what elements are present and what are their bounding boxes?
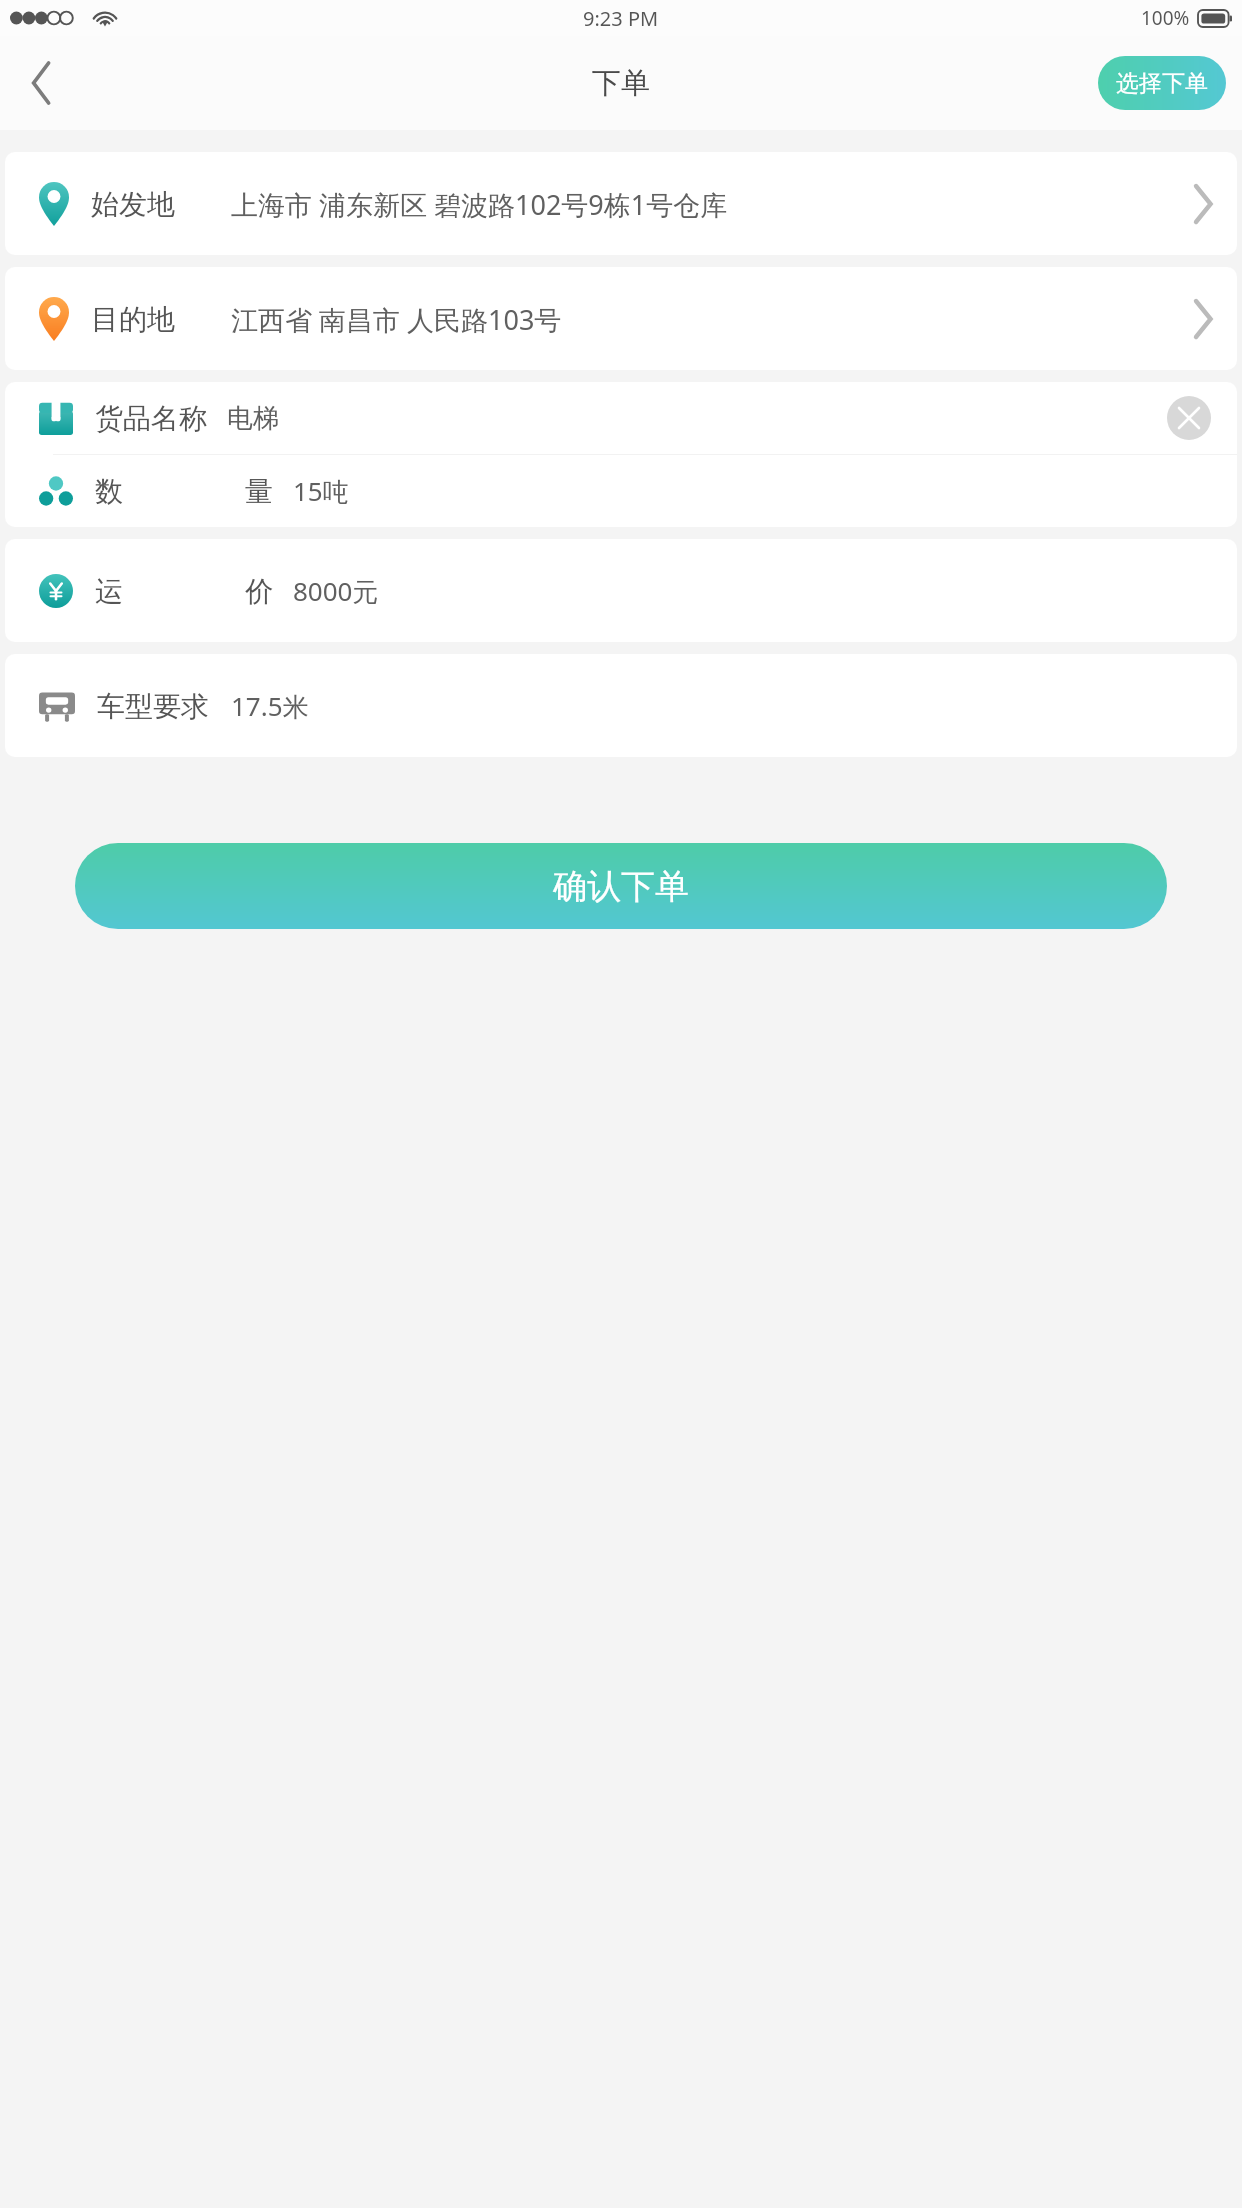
staticText: 货品名称: [95, 401, 207, 436]
staticText: 下单: [592, 65, 650, 102]
staticText: 15吨: [293, 473, 349, 509]
button[interactable]: 数: [5, 455, 1237, 527]
button[interactable]: Back: [0, 36, 84, 130]
staticText: 江西省 南昌市 人民路103号: [231, 301, 562, 338]
staticText: 选择下单: [1116, 69, 1208, 98]
button[interactable]: 目的地: [5, 267, 1237, 370]
button[interactable]: Clear goods name: [1167, 396, 1211, 440]
staticText: 价: [245, 574, 273, 609]
staticText: 17.5米: [231, 688, 309, 724]
staticText: 车型要求: [97, 689, 209, 724]
button[interactable]: 确认下单: [75, 843, 1167, 929]
staticText: 数: [95, 474, 123, 509]
staticText: 上海市 浦东新区 碧波路102号9栋1号仓库: [231, 186, 728, 223]
button[interactable]: 运: [5, 539, 1237, 642]
staticText: 确认下单: [553, 865, 689, 908]
staticText: 始发地: [91, 187, 175, 222]
staticText: 电梯: [227, 402, 279, 435]
staticText: 目的地: [91, 302, 175, 337]
staticText: 100%: [1141, 5, 1190, 31]
staticText: 运: [95, 574, 123, 609]
button[interactable]: 选择下单: [1098, 56, 1226, 110]
staticText: 量: [245, 474, 273, 509]
staticText: 8000元: [293, 573, 379, 609]
button[interactable]: 始发地: [5, 152, 1237, 255]
staticText: 9:23 PM: [583, 5, 659, 32]
button[interactable]: 车型要求: [5, 654, 1237, 757]
button[interactable]: 货品名称: [5, 382, 1237, 454]
